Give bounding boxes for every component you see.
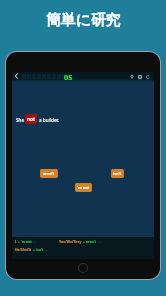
button[interactable]: You/We/They xyxy=(59,238,101,245)
staticText: ... xyxy=(97,239,101,244)
staticText: 'm not xyxy=(21,239,32,244)
button[interactable]: 're not xyxy=(75,183,92,192)
staticText: I xyxy=(15,239,17,244)
staticText: 05 xyxy=(64,72,73,82)
button[interactable]: aren't xyxy=(40,169,58,178)
button[interactable]: Back xyxy=(13,72,20,79)
staticText: isn't xyxy=(36,247,44,252)
staticText: She xyxy=(16,117,25,123)
button[interactable]: not xyxy=(25,114,37,124)
staticText: 're not xyxy=(77,185,90,190)
button[interactable]: Home xyxy=(77,262,89,274)
staticText: + xyxy=(17,239,21,244)
staticText: 簡単に研究 xyxy=(46,11,121,30)
staticText: isn't xyxy=(113,171,122,176)
staticText: ... xyxy=(32,239,36,244)
button[interactable]: isn't xyxy=(111,169,124,178)
button[interactable]: I xyxy=(15,238,36,245)
button[interactable]: He/She/It xyxy=(15,246,48,253)
staticText: You/We/They xyxy=(59,239,82,244)
staticText: ... xyxy=(44,247,48,252)
staticText: aren't xyxy=(86,239,97,244)
staticText: He/She/It xyxy=(15,247,32,252)
staticText: + xyxy=(32,247,36,252)
staticText: not xyxy=(27,116,36,122)
button[interactable]: Restart xyxy=(145,73,151,80)
staticText: aren't xyxy=(43,171,55,176)
staticText: + xyxy=(82,239,86,244)
button[interactable]: Volume xyxy=(129,73,135,80)
button[interactable]: Settings xyxy=(137,73,143,80)
staticText: a builder. xyxy=(39,117,60,123)
